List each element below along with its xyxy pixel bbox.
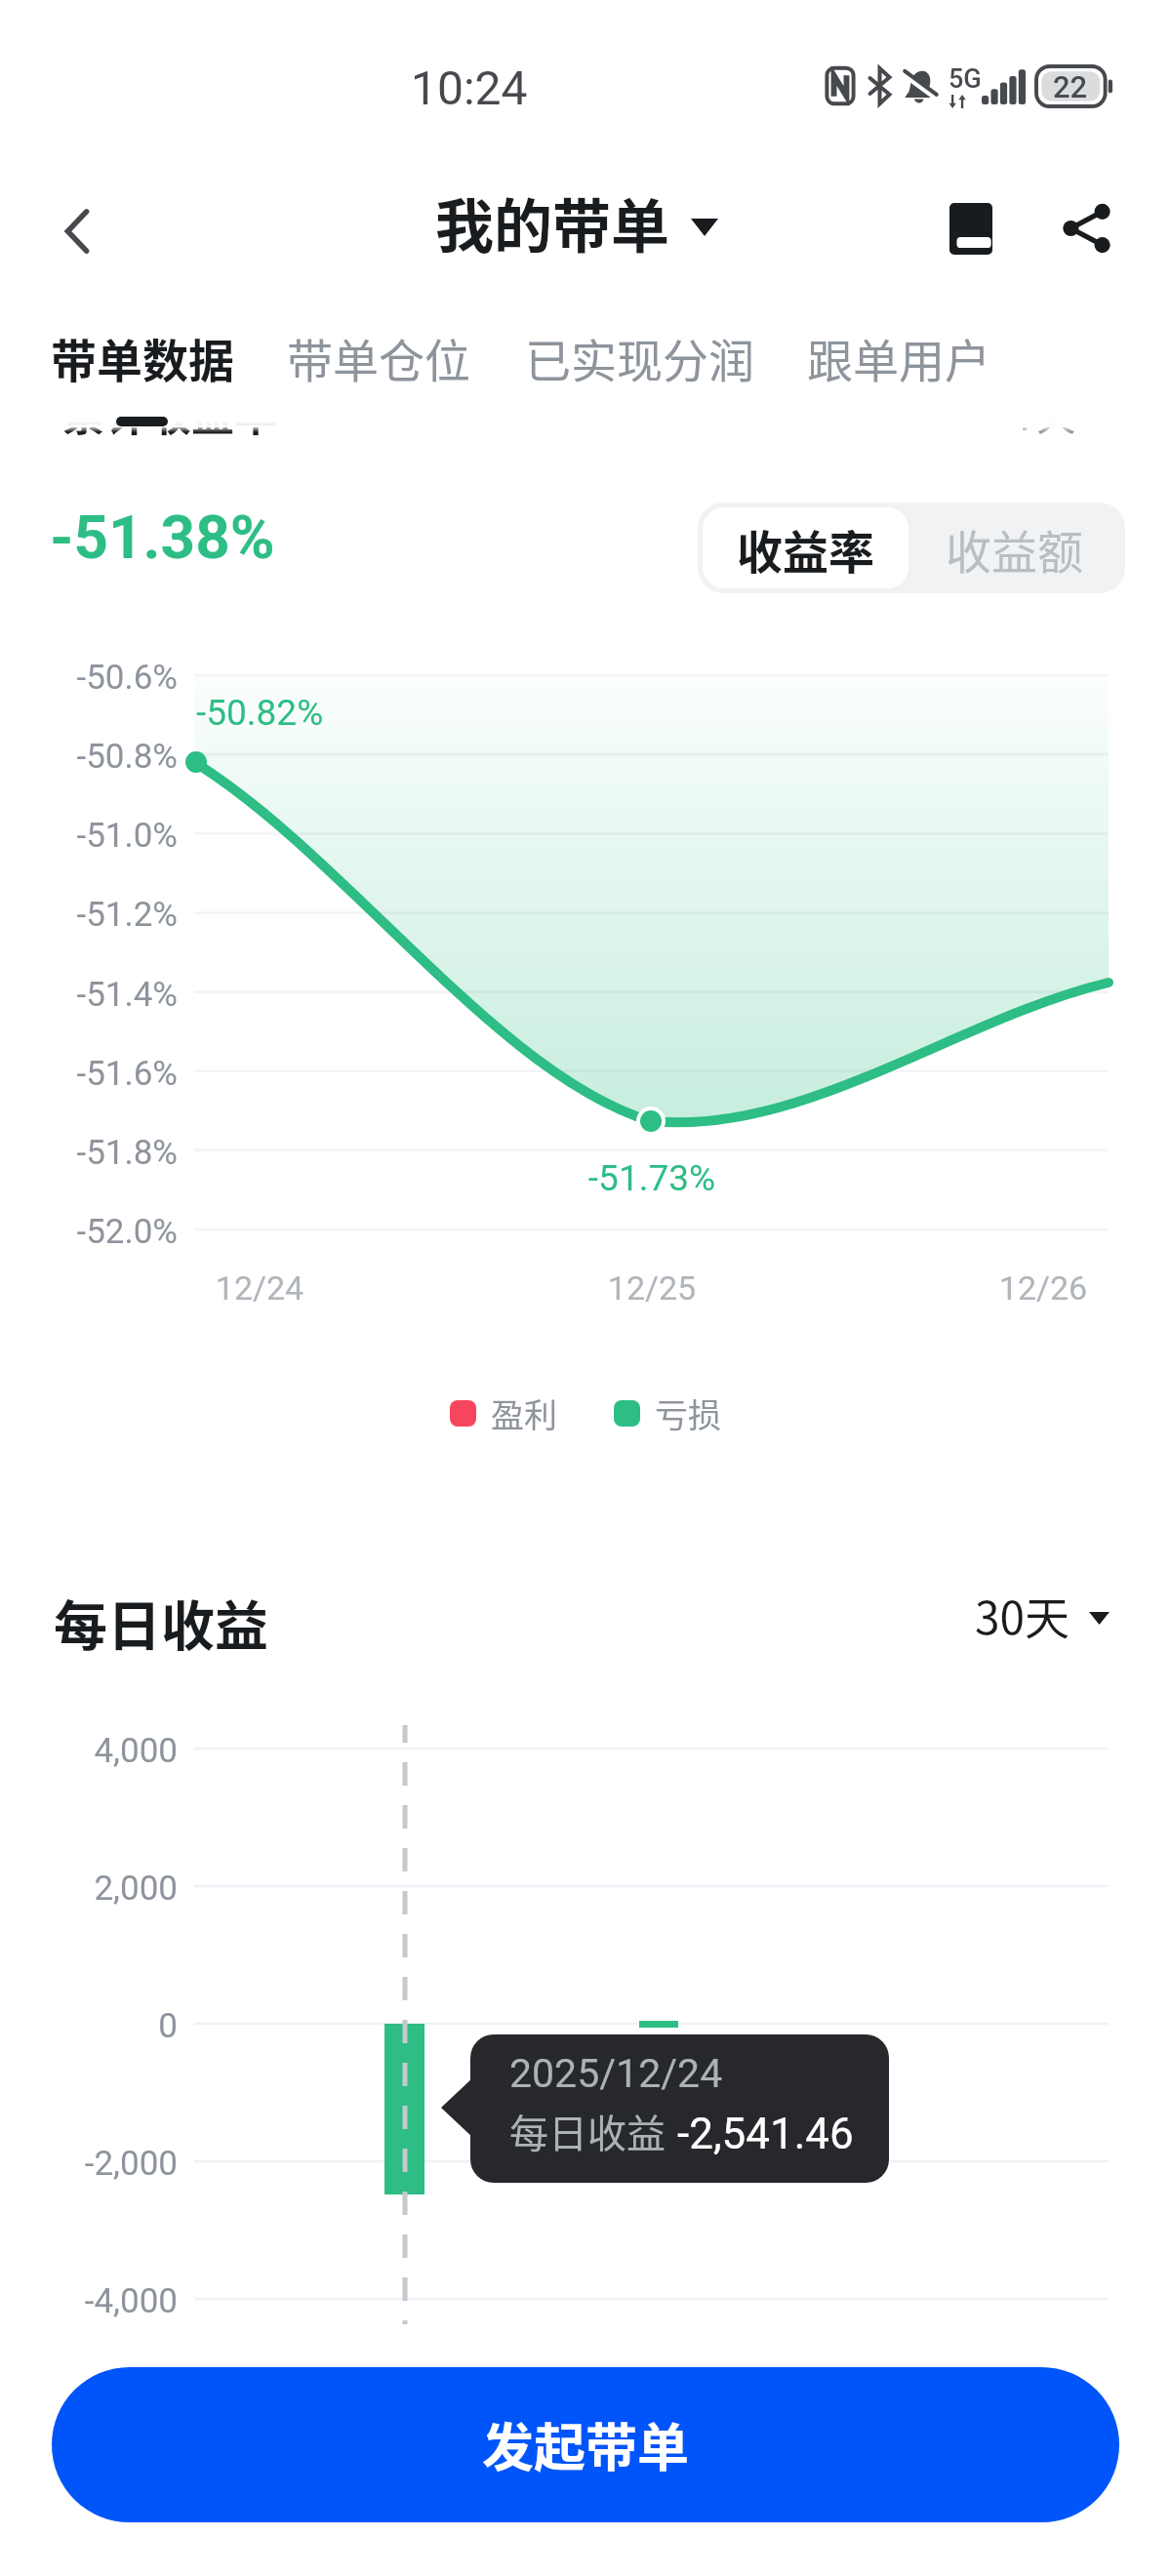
button[interactable]: Back	[24, 179, 130, 284]
staticText: 累计收益率	[62, 382, 277, 444]
staticText: -51.8%	[0, 1133, 178, 1173]
staticText: 12/26	[946, 1268, 1141, 1308]
staticText: -50.8%	[0, 737, 178, 777]
button[interactable]: 带单数据	[51, 324, 234, 390]
staticText: 发起带单	[482, 2407, 689, 2482]
staticText: 7天	[1015, 385, 1076, 442]
staticText: 已实现分润	[525, 324, 754, 390]
staticText: -50.82%	[196, 692, 324, 734]
button[interactable]: 收益额	[909, 507, 1120, 588]
button[interactable]: Notes	[918, 176, 1024, 281]
button[interactable]: 我的带单	[435, 180, 718, 264]
staticText: -51.73%	[505, 1157, 798, 1199]
staticText: -51.0%	[0, 816, 178, 856]
button[interactable]: 跟单用户	[807, 324, 990, 390]
staticText: 12/25	[554, 1268, 749, 1308]
staticText: 跟单用户	[807, 324, 990, 390]
button[interactable]: Share	[1034, 176, 1140, 281]
staticText: 每日收益	[509, 2103, 666, 2159]
button[interactable]: 收益率	[703, 507, 909, 588]
button[interactable]: 带单仓位	[287, 324, 470, 390]
staticText: -2,000	[0, 2144, 178, 2184]
staticText: -51.4%	[0, 975, 178, 1015]
staticText: 10:24	[411, 60, 528, 115]
staticText: 5G	[949, 63, 982, 95]
staticText: 亏损	[655, 1389, 721, 1437]
staticText: 2025/12/24	[509, 2050, 723, 2097]
staticText: -2,541.46	[677, 2109, 854, 2159]
staticText: -51.38%	[50, 502, 275, 573]
staticText: 12/24	[162, 1268, 357, 1308]
button[interactable]: 已实现分润	[525, 324, 754, 390]
staticText: -51.6%	[0, 1054, 178, 1094]
staticText: -4,000	[0, 2281, 178, 2321]
staticText: 4,000	[0, 1731, 178, 1771]
staticText: 收益额	[946, 515, 1083, 582]
staticText: -50.6%	[0, 658, 178, 698]
staticText: -51.2%	[0, 895, 178, 935]
staticText: 0	[0, 2006, 178, 2046]
staticText: 带单仓位	[287, 324, 470, 390]
staticText: 收益率	[737, 515, 874, 582]
staticText: 带单数据	[51, 324, 234, 390]
button[interactable]: 发起带单	[52, 2367, 1119, 2522]
staticText: 22	[1053, 69, 1088, 104]
staticText: 2,000	[0, 1869, 178, 1909]
staticText: 我的带单	[435, 180, 669, 264]
staticText: 每日收益	[54, 1583, 269, 1661]
staticText: 30天	[975, 1583, 1070, 1648]
button[interactable]: 30天	[975, 1583, 1110, 1648]
staticText: -52.0%	[0, 1212, 178, 1252]
staticText: 盈利	[491, 1389, 557, 1437]
